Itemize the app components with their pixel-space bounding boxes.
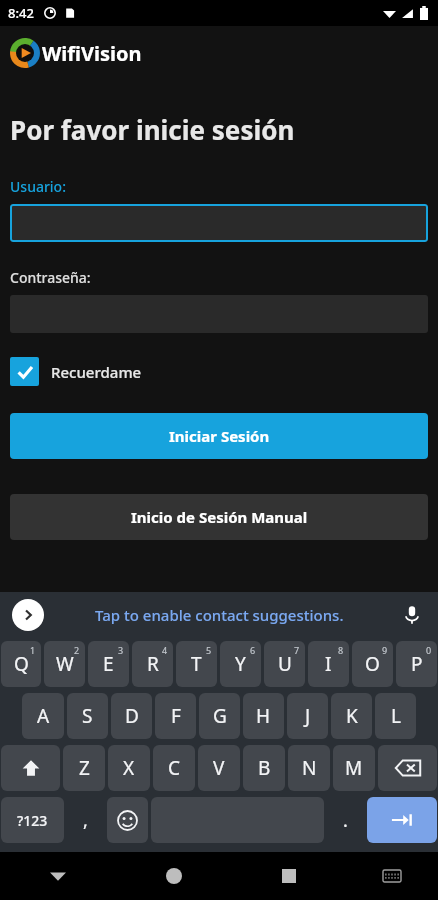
staticText: Z [79,755,90,781]
button[interactable]: O [352,641,393,687]
button[interactable]: Shift [1,745,60,791]
button[interactable]: Q [1,641,41,687]
staticText: R [147,651,159,677]
staticText: Por favor inicie sesión [10,112,295,147]
staticText: B [258,755,271,781]
staticText: 0 [426,644,432,656]
button[interactable]: M [333,745,375,791]
staticText: WifiVision [42,40,142,67]
staticText: 7 [294,644,300,656]
staticText: F [171,703,181,729]
button[interactable]: E [88,641,129,687]
staticText: O [365,651,380,677]
button[interactable]: Voice input [398,601,426,629]
button[interactable]: S [67,693,108,739]
button[interactable]: L [375,693,416,739]
button[interactable]: ?123 [1,797,64,843]
button[interactable]: B [243,745,285,791]
staticText: Inicio de Sesión Manual [131,507,308,527]
staticText: T [191,651,202,677]
staticText: Usuario: [10,177,66,196]
button[interactable]: Tap to enable contact suggestions. [95,605,344,625]
staticText: C [168,755,181,781]
button[interactable]: X [108,745,150,791]
button[interactable]: A [22,693,64,739]
staticText: G [213,703,227,729]
button[interactable] [10,204,428,242]
staticText: 1 [30,644,36,656]
staticText: 8 [338,644,344,656]
staticText: 5 [206,644,212,656]
button[interactable]: . [327,797,364,843]
staticText: Recuerdame [51,362,142,382]
button[interactable]: F [155,693,196,739]
staticText: H [256,703,271,729]
button[interactable]: Expand suggestions [12,599,44,631]
staticText: Q [14,651,29,677]
button[interactable]: T [176,641,217,687]
button[interactable]: U [264,641,305,687]
button[interactable]: V [198,745,240,791]
staticText: I [325,651,332,677]
staticText: 8:42 [8,4,34,22]
staticText: D [125,703,139,729]
button[interactable]: Home [116,852,231,900]
staticText: 3 [118,644,124,656]
staticText: 9 [382,644,388,656]
button[interactable]: W [44,641,85,687]
staticText: J [305,703,311,729]
staticText: . [343,808,348,833]
staticText: 6 [250,644,256,656]
button[interactable]: Y [220,641,261,687]
button[interactable]: Emoji [107,797,148,843]
staticText: Contraseña: [10,268,91,287]
staticText: K [346,703,358,729]
button[interactable]: Iniciar Sesión [10,413,428,459]
button[interactable]: Switch keyboard [346,852,438,900]
staticText: S [82,703,93,729]
button[interactable]: Hide keyboard [0,852,116,900]
staticText: E [103,651,114,677]
staticText: X [123,755,135,781]
button[interactable]: K [331,693,372,739]
button[interactable]: Inicio de Sesión Manual [10,494,428,540]
button[interactable]: Recents [231,852,346,900]
staticText: P [411,651,423,677]
staticText: Iniciar Sesión [169,426,270,446]
button[interactable]: N [288,745,330,791]
button[interactable]: Z [63,745,105,791]
button[interactable]: Backspace [378,745,437,791]
staticText: W [56,651,74,677]
staticText: ?123 [17,811,48,830]
staticText: L [391,703,401,729]
button[interactable]: D [111,693,152,739]
staticText: Y [235,651,246,677]
button[interactable]: I [308,641,349,687]
button[interactable]: R [132,641,173,687]
button[interactable]: Recuerdame [10,357,142,386]
staticText: A [37,703,50,729]
staticText: V [213,755,225,781]
staticText: 4 [162,644,168,656]
button[interactable]: J [287,693,328,739]
staticText: U [278,651,292,677]
button[interactable]: H [243,693,284,739]
staticText: M [345,755,363,781]
button[interactable]: C [153,745,195,791]
button[interactable]: Next [367,797,437,843]
button[interactable]: G [199,693,240,739]
staticText: 2 [74,644,80,656]
button[interactable]: , [67,797,104,843]
staticText: N [302,755,317,781]
staticText: , [83,808,88,833]
button[interactable]: P [396,641,437,687]
